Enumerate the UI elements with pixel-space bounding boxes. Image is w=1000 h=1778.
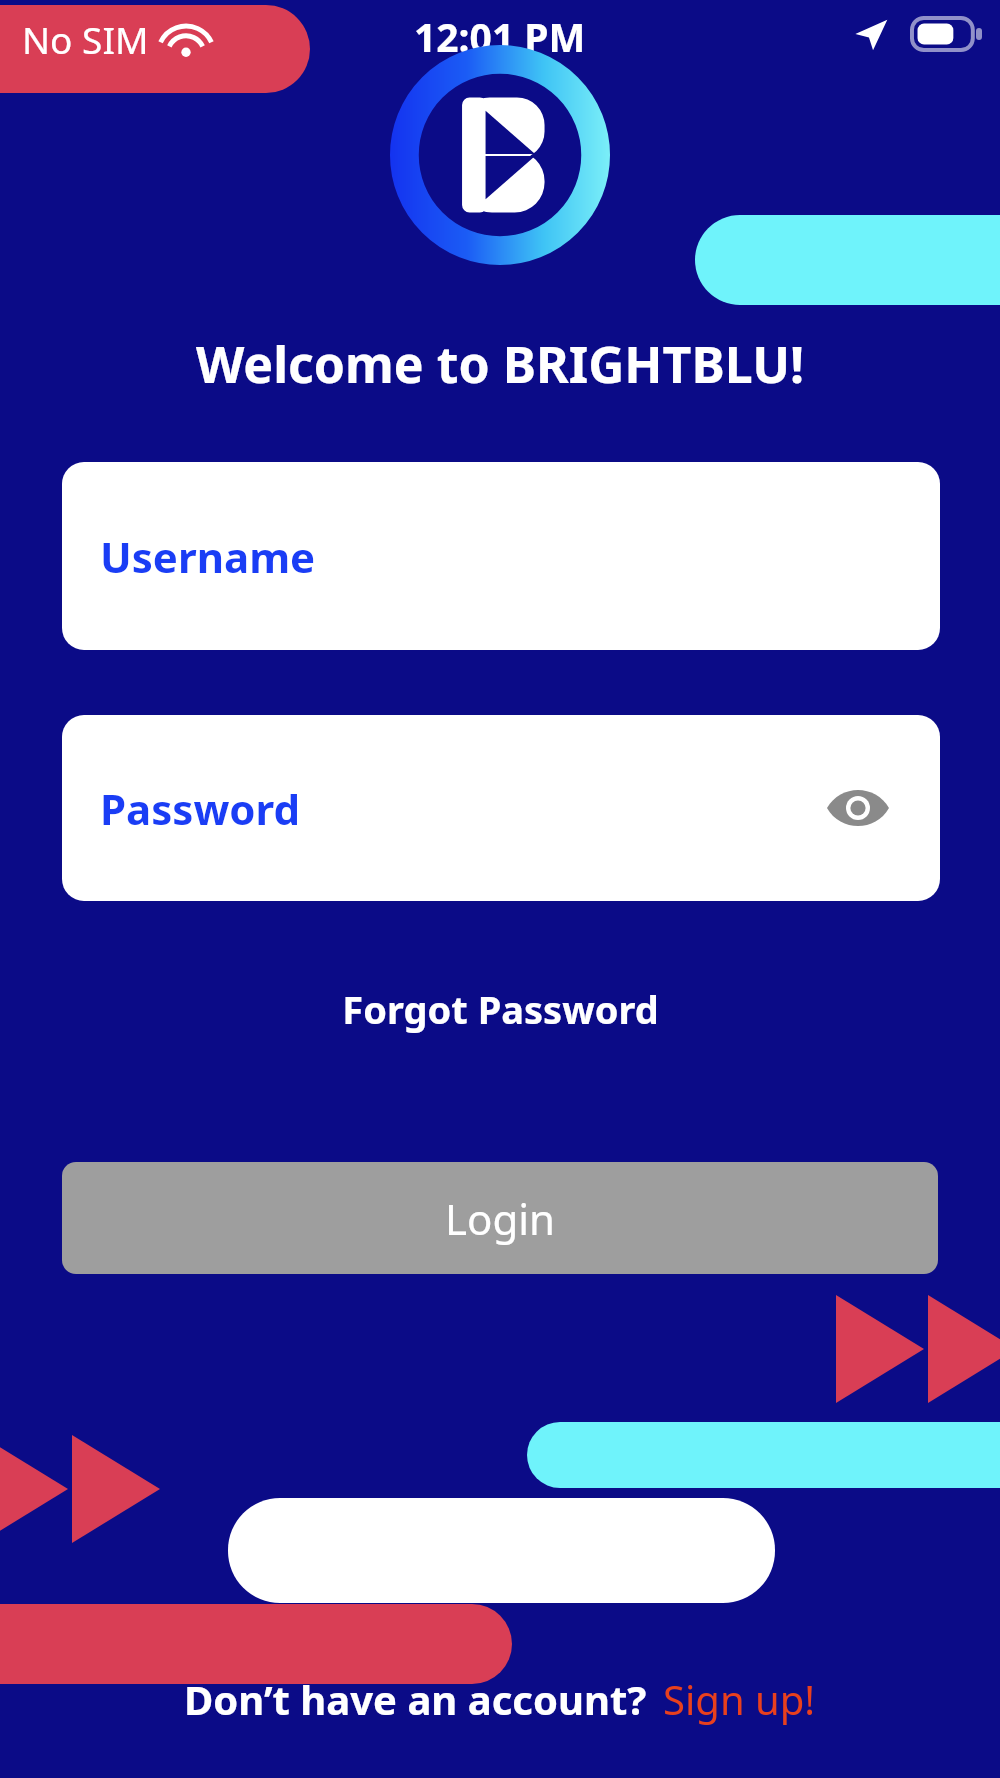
staticText: Welcome to BRIGHTBLU!	[0, 330, 1000, 1778]
button[interactable]: Login	[62, 1162, 938, 1274]
staticText: No SIM	[22, 14, 149, 64]
button[interactable]: Sign up!	[663, 1672, 816, 1726]
staticText: 12:01 PM	[414, 10, 586, 63]
button[interactable]: Username	[62, 462, 940, 650]
staticText: Login	[445, 1190, 556, 1247]
button[interactable]: Password	[62, 715, 940, 901]
staticText: Don’t have an account?	[184, 1672, 647, 1726]
staticText: Password	[100, 780, 301, 837]
staticText: Username	[100, 528, 316, 585]
staticText: Sign up!	[663, 1672, 816, 1726]
button[interactable]: Show password	[822, 780, 894, 836]
staticText: Forgot Password	[342, 983, 659, 1035]
button[interactable]: Forgot Password	[326, 975, 675, 1043]
